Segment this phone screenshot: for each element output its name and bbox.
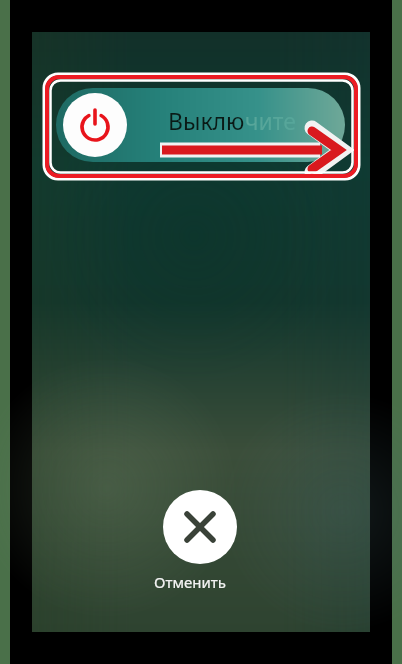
button[interactable]: Выключите — слайдер выключения [56,88,345,162]
staticText: Выклю [168,105,245,136]
staticText: Отменить [154,572,226,592]
staticText: чите [245,105,296,136]
button[interactable]: Отменить [163,490,237,564]
